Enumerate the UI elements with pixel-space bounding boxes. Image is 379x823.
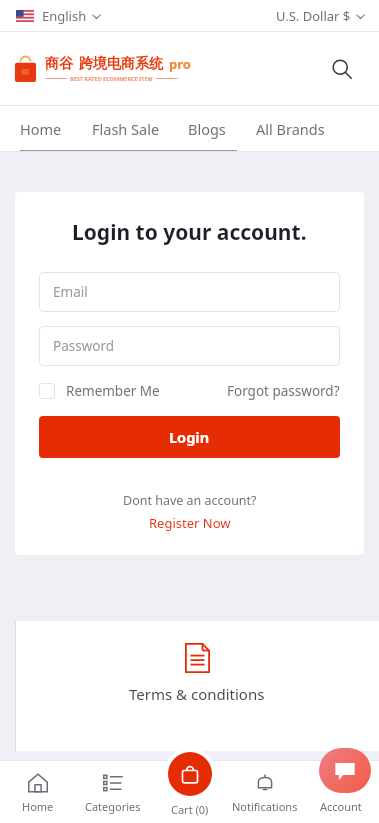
staticText: English [42, 7, 87, 25]
button[interactable]: Chat support [319, 748, 371, 793]
button[interactable]: Flash Sale [92, 113, 160, 145]
button[interactable]: English [14, 3, 103, 29]
staticText: 商谷 [45, 55, 73, 73]
staticText: Email [53, 283, 88, 301]
button[interactable]: Home [20, 113, 62, 145]
staticText: U.S. Dollar $ [276, 7, 351, 25]
staticText: All Brands [256, 119, 325, 139]
button[interactable]: Categories [75, 761, 151, 823]
staticText: Login to your account. [72, 218, 307, 247]
button[interactable]: Email [39, 272, 340, 312]
staticText: Password [53, 337, 115, 355]
button[interactable]: Forgot password? [227, 380, 340, 402]
button[interactable]: Terms & conditions [129, 643, 265, 704]
button[interactable]: Remember Me [39, 382, 160, 400]
button[interactable]: Notifications [227, 761, 303, 823]
button[interactable]: U.S. Dollar $ [274, 3, 367, 29]
button[interactable]: All Brands [256, 113, 325, 145]
staticText: Remember Me [66, 382, 160, 400]
staticText: Account [320, 799, 362, 814]
button[interactable]: Register Now [145, 513, 235, 533]
staticText: Flash Sale [92, 119, 160, 139]
button[interactable]: Cart (0) [164, 748, 216, 816]
staticText: Notifications [232, 799, 298, 814]
staticText: BEST RATED ECOMMERCE ITEM [70, 75, 153, 82]
button[interactable]: Account [303, 761, 379, 823]
staticText: Home [22, 799, 54, 814]
button[interactable]: Login [39, 416, 340, 458]
staticText: Categories [85, 799, 141, 814]
staticText: pro [169, 55, 191, 73]
staticText: Home [20, 119, 62, 139]
button[interactable]: 商谷 [14, 55, 191, 82]
button[interactable]: Home [0, 761, 75, 823]
staticText: Blogs [188, 119, 226, 139]
staticText: Forgot password? [227, 382, 340, 400]
staticText: Login [169, 427, 210, 447]
staticText: 跨境电商系统 [79, 55, 163, 73]
button[interactable]: Password [39, 326, 340, 366]
staticText: Terms & conditions [129, 684, 265, 704]
button[interactable]: Blogs [188, 113, 226, 145]
staticText: Register Now [149, 514, 231, 532]
button[interactable]: Search [325, 52, 359, 86]
staticText: Cart (0) [171, 802, 209, 816]
staticText: Dont have an account? [123, 492, 257, 509]
